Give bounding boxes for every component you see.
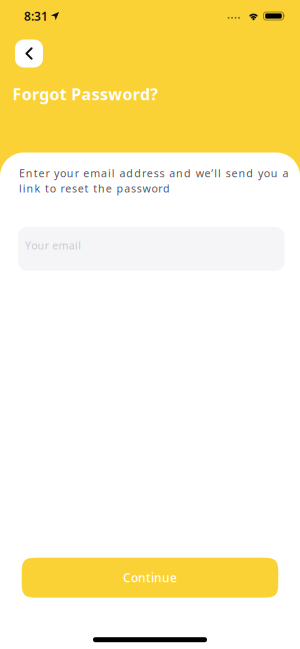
button[interactable]: Back: [15, 39, 43, 67]
staticText: Continue: [123, 570, 177, 586]
staticText: link to reset the password: [19, 181, 170, 195]
staticText: Enter your email address and we’ll send …: [19, 166, 288, 180]
staticText: Your email: [25, 238, 81, 252]
staticText: Forgot Password?: [12, 83, 158, 105]
button[interactable]: Your email: [18, 227, 284, 271]
staticText: 8:31: [24, 8, 48, 24]
button[interactable]: Continue: [22, 558, 278, 598]
